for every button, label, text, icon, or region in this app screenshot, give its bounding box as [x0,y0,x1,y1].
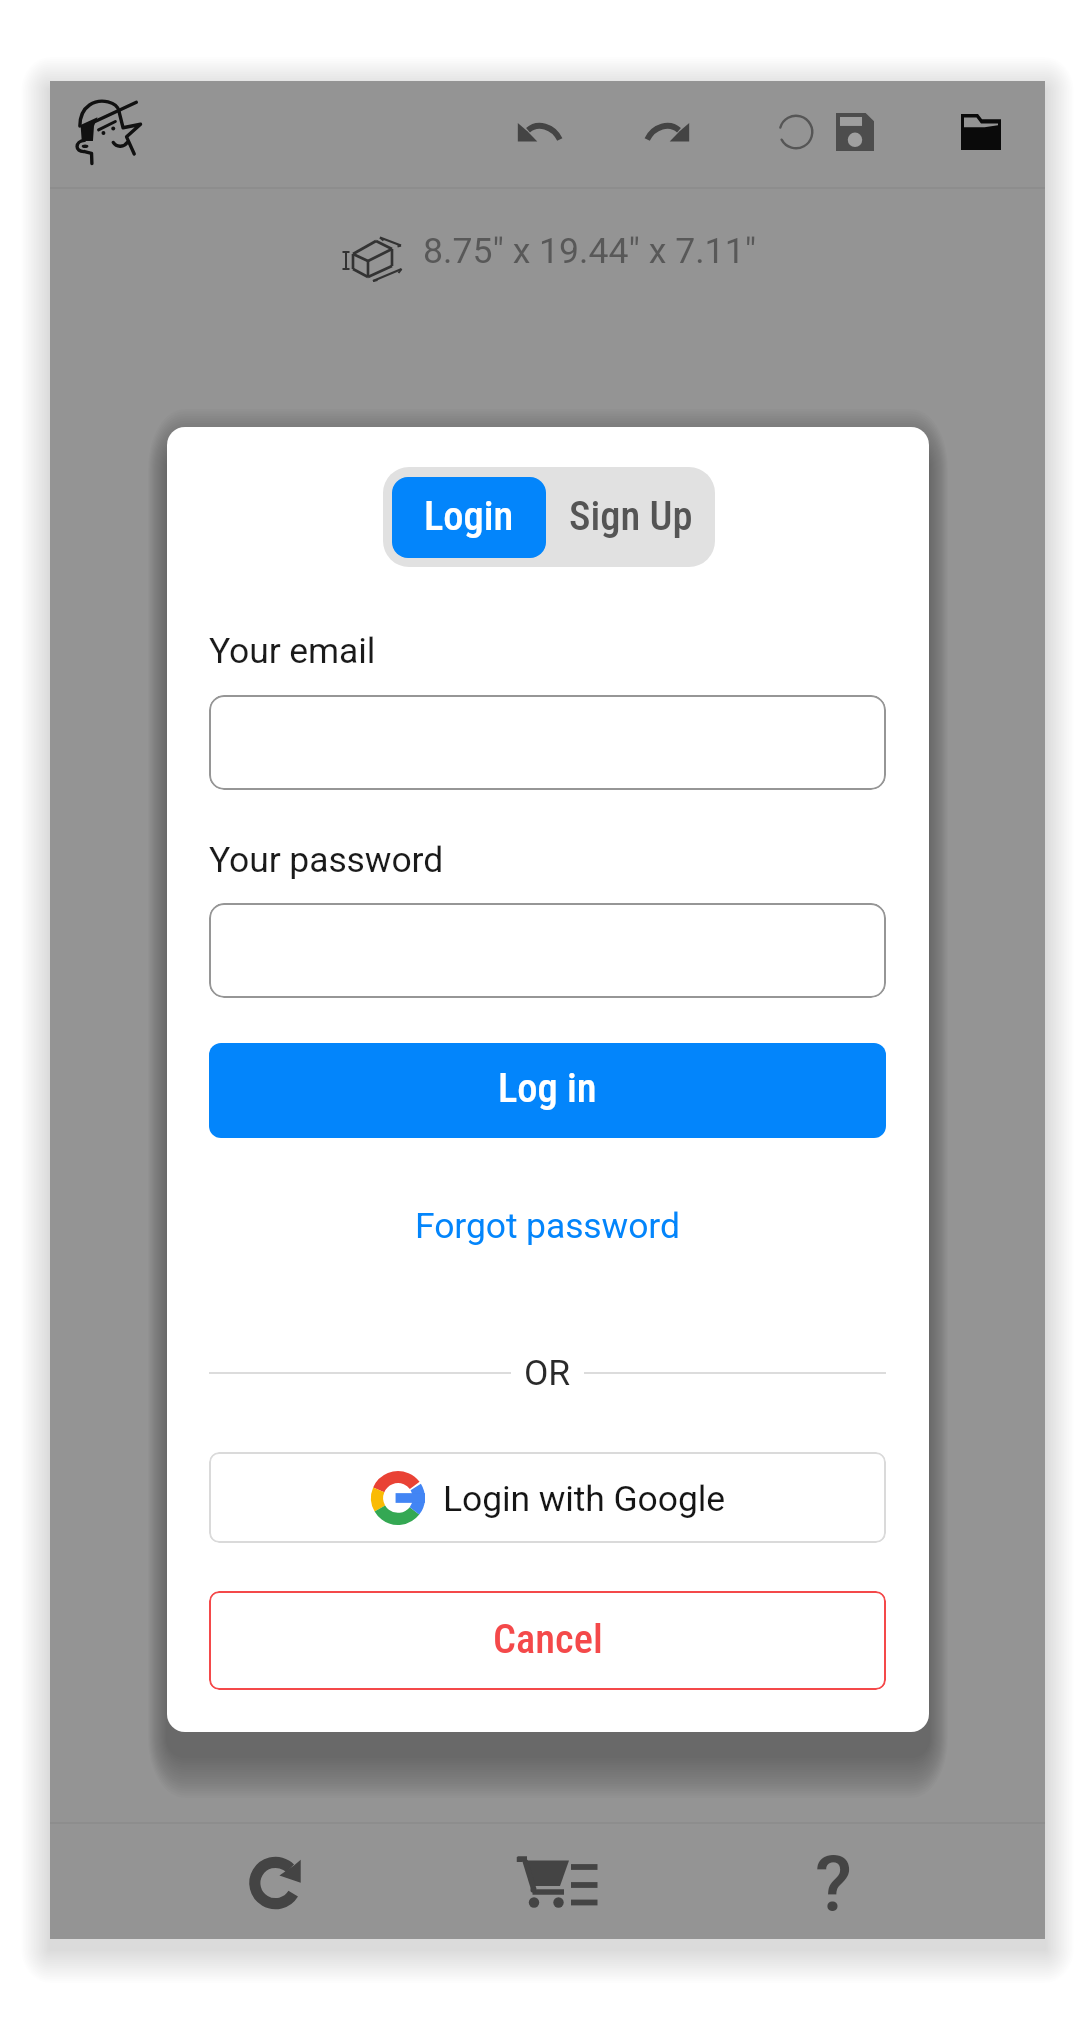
staticText: Forgot password [415,1205,680,1247]
staticText: Sign Up [569,492,693,539]
staticText: Your email [209,630,376,672]
button[interactable]: Open file [956,107,1006,157]
staticText: OR [524,1352,571,1394]
button[interactable]: SketchUp home [61,86,155,180]
button[interactable]: Sync [774,110,818,154]
button[interactable]: Refresh [218,1824,334,1941]
button[interactable]: Sign Up [546,477,715,558]
staticText: Log in [498,1064,597,1111]
button[interactable] [209,695,886,790]
button[interactable]: Login with Google [209,1452,886,1543]
button[interactable]: Log in [209,1043,886,1138]
button[interactable] [209,903,886,998]
button[interactable]: Undo [510,102,570,162]
button[interactable]: Redo [637,102,697,162]
button[interactable]: Login [392,477,546,558]
staticText: Your password [209,839,444,881]
button[interactable]: Cancel [209,1591,886,1690]
button[interactable]: Shopping cart [499,1824,615,1941]
staticText: 8.75" x 19.44" x 7.11" [423,230,757,272]
staticText: Login with Google [443,1478,725,1520]
staticText: ? [815,1839,852,1928]
button[interactable]: Forgot password [209,1196,886,1258]
staticText: Login [424,492,514,539]
staticText: Cancel [493,1615,603,1662]
button[interactable]: Help [775,1822,891,1939]
button[interactable]: Save [836,113,874,151]
